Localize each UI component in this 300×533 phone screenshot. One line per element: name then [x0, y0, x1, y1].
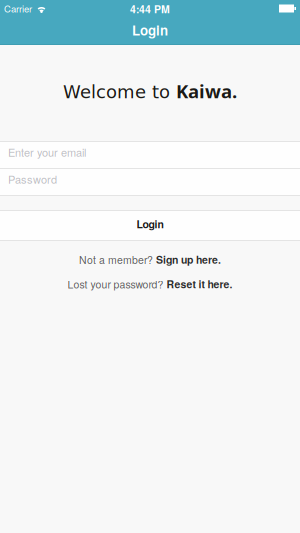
staticText: Welcome to Kaiwa.	[63, 78, 237, 104]
staticText: Login	[132, 20, 168, 40]
staticText: Enter your email	[8, 144, 86, 160]
button[interactable]: Enter your email	[0, 142, 300, 168]
staticText: 4:44 PM	[130, 1, 170, 16]
button[interactable]: Reset it here.	[166, 276, 232, 291]
staticText: Login	[136, 216, 163, 231]
staticText: Not a member?	[79, 252, 156, 267]
staticText: Reset it here.	[166, 276, 232, 291]
staticText: Lost your password?	[67, 276, 166, 291]
button[interactable]: Sign up here.	[156, 252, 221, 267]
staticText: Password	[8, 171, 57, 187]
button[interactable]: Password	[0, 169, 300, 195]
staticText: Carrier	[4, 2, 32, 15]
staticText: Sign up here.	[156, 252, 221, 267]
button[interactable]: Login	[0, 211, 300, 240]
